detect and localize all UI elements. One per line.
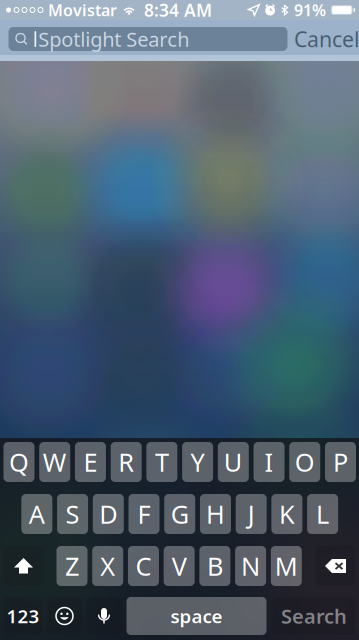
staticText: O: [295, 445, 315, 479]
button[interactable]: L: [307, 494, 338, 534]
staticText: Search: [281, 603, 347, 629]
staticText: L: [316, 497, 329, 531]
staticText: B: [207, 549, 223, 583]
button[interactable]: Q: [3, 442, 34, 482]
button[interactable]: 123: [3, 597, 42, 635]
button[interactable]: N: [235, 546, 266, 586]
button[interactable]: Spotlight Search: [8, 27, 287, 51]
staticText: H: [206, 497, 225, 531]
staticText: 8:34 AM: [144, 0, 212, 21]
button[interactable]: S: [57, 494, 88, 534]
staticText: 91%: [294, 0, 326, 21]
staticText: 123: [6, 604, 39, 628]
button[interactable]: Shift: [3, 546, 43, 586]
button[interactable]: Y: [182, 442, 213, 482]
button[interactable]: K: [271, 494, 302, 534]
button[interactable]: Cancel: [288, 24, 359, 54]
staticText: F: [137, 497, 150, 531]
button[interactable]: I: [253, 442, 284, 482]
button[interactable]: X: [92, 546, 123, 586]
button[interactable]: Z: [56, 546, 87, 586]
staticText: E: [83, 445, 97, 479]
button[interactable]: Dictation: [86, 597, 121, 635]
staticText: I: [264, 445, 273, 479]
button[interactable]: M: [271, 546, 302, 586]
staticText: Spotlight Search: [38, 26, 189, 52]
staticText: T: [155, 445, 169, 479]
staticText: Movistar: [48, 0, 117, 21]
staticText: U: [224, 445, 243, 479]
button[interactable]: Delete: [315, 546, 355, 586]
button[interactable]: Search: [272, 597, 355, 635]
staticText: P: [333, 445, 348, 479]
button[interactable]: C: [128, 546, 159, 586]
button[interactable]: F: [128, 494, 159, 534]
staticText: Y: [191, 445, 205, 479]
staticText: D: [99, 497, 117, 531]
button[interactable]: U: [218, 442, 249, 482]
staticText: Q: [9, 445, 29, 479]
button[interactable]: P: [325, 442, 356, 482]
staticText: Cancel: [294, 25, 359, 53]
button[interactable]: D: [93, 494, 124, 534]
button[interactable]: T: [146, 442, 177, 482]
staticText: S: [66, 497, 80, 531]
button[interactable]: J: [236, 494, 267, 534]
button[interactable]: H: [200, 494, 231, 534]
button[interactable]: W: [39, 442, 70, 482]
button[interactable]: O: [289, 442, 320, 482]
button[interactable]: B: [199, 546, 230, 586]
button[interactable]: E: [75, 442, 106, 482]
staticText: space: [170, 604, 222, 628]
staticText: W: [43, 445, 67, 479]
staticText: C: [135, 549, 151, 583]
staticText: A: [29, 497, 45, 531]
staticText: M: [275, 549, 298, 583]
staticText: R: [118, 445, 134, 479]
staticText: G: [171, 497, 189, 531]
staticText: K: [279, 497, 295, 531]
staticText: J: [248, 497, 255, 531]
staticText: V: [172, 549, 187, 583]
staticText: N: [241, 549, 260, 583]
button[interactable]: G: [164, 494, 195, 534]
button[interactable]: A: [21, 494, 52, 534]
button[interactable]: space: [126, 597, 266, 635]
button[interactable]: Emoji: [46, 597, 82, 635]
staticText: X: [100, 549, 115, 583]
button[interactable]: V: [164, 546, 195, 586]
staticText: Z: [65, 549, 79, 583]
button[interactable]: R: [111, 442, 142, 482]
